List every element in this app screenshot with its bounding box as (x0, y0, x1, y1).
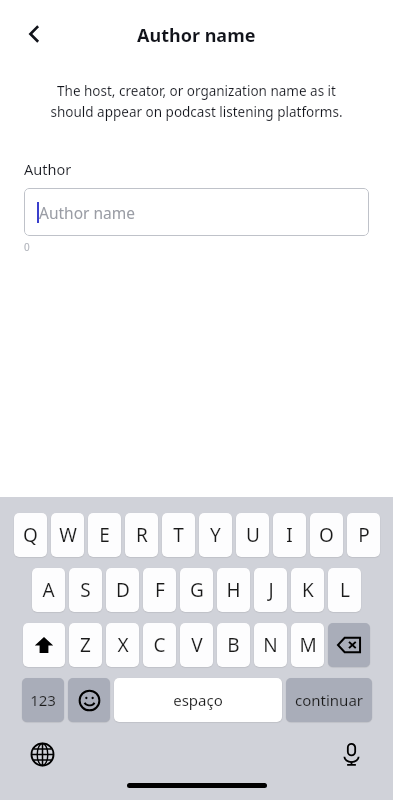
staticText: C (153, 632, 166, 658)
button[interactable]: Emoji (68, 678, 110, 722)
button[interactable]: H (217, 568, 250, 612)
staticText: W (59, 522, 77, 548)
button[interactable]: continuar (286, 678, 372, 722)
button[interactable]: D (106, 568, 139, 612)
button[interactable]: Y (199, 513, 232, 557)
button[interactable]: Backspace (328, 623, 370, 667)
button[interactable]: K (291, 568, 324, 612)
staticText: J (268, 577, 274, 603)
staticText: F (155, 577, 165, 603)
button[interactable]: Author name (24, 188, 369, 236)
staticText: R (136, 522, 148, 548)
staticText: continuar (295, 690, 363, 710)
button[interactable]: S (69, 568, 102, 612)
button[interactable]: O (310, 513, 343, 557)
button[interactable]: I (273, 513, 306, 557)
staticText: U (246, 522, 260, 548)
staticText: M (299, 632, 317, 658)
staticText: Author (24, 159, 72, 179)
button[interactable]: Back (18, 18, 50, 50)
staticText: X (117, 632, 129, 658)
button[interactable]: B (217, 623, 250, 667)
button[interactable]: A (32, 568, 65, 612)
button[interactable]: U (236, 513, 269, 557)
button[interactable]: espaço (114, 678, 282, 722)
staticText: N (263, 632, 278, 658)
button[interactable]: 123 (22, 678, 64, 722)
staticText: L (340, 577, 350, 603)
staticText: O (319, 522, 334, 548)
staticText: K (302, 577, 314, 603)
button[interactable]: T (162, 513, 195, 557)
staticText: A (42, 577, 55, 603)
button[interactable]: R (125, 513, 158, 557)
staticText: espaço (173, 690, 223, 710)
button[interactable]: E (88, 513, 121, 557)
button[interactable]: Shift (23, 623, 65, 667)
staticText: V (191, 632, 203, 658)
button[interactable]: N (254, 623, 287, 667)
staticText: 0 (24, 240, 30, 254)
button[interactable]: V (180, 623, 213, 667)
staticText: Q (23, 522, 38, 548)
staticText: Author name (137, 23, 256, 48)
staticText: B (227, 632, 240, 658)
staticText: H (226, 577, 241, 603)
staticText: 123 (30, 690, 56, 710)
button[interactable]: J (254, 568, 287, 612)
button[interactable]: W (51, 513, 84, 557)
staticText: The host, creator, or organization name … (20, 82, 373, 121)
button[interactable]: Z (69, 623, 102, 667)
button[interactable]: P (347, 513, 380, 557)
button[interactable]: X (106, 623, 139, 667)
button[interactable]: Change language (25, 737, 59, 771)
button[interactable]: G (180, 568, 213, 612)
staticText: G (190, 577, 204, 603)
button[interactable]: Q (14, 513, 47, 557)
staticText: Author name (39, 202, 135, 223)
staticText: D (116, 577, 130, 603)
staticText: P (358, 522, 370, 548)
staticText: T (173, 522, 184, 548)
button[interactable]: L (328, 568, 361, 612)
button[interactable]: M (291, 623, 324, 667)
staticText: Z (80, 632, 91, 658)
staticText: E (99, 522, 110, 548)
staticText: S (80, 577, 91, 603)
button[interactable]: C (143, 623, 176, 667)
button[interactable]: Voice input (334, 737, 368, 771)
staticText: I (286, 522, 293, 548)
button[interactable]: F (143, 568, 176, 612)
staticText: Y (210, 522, 221, 548)
